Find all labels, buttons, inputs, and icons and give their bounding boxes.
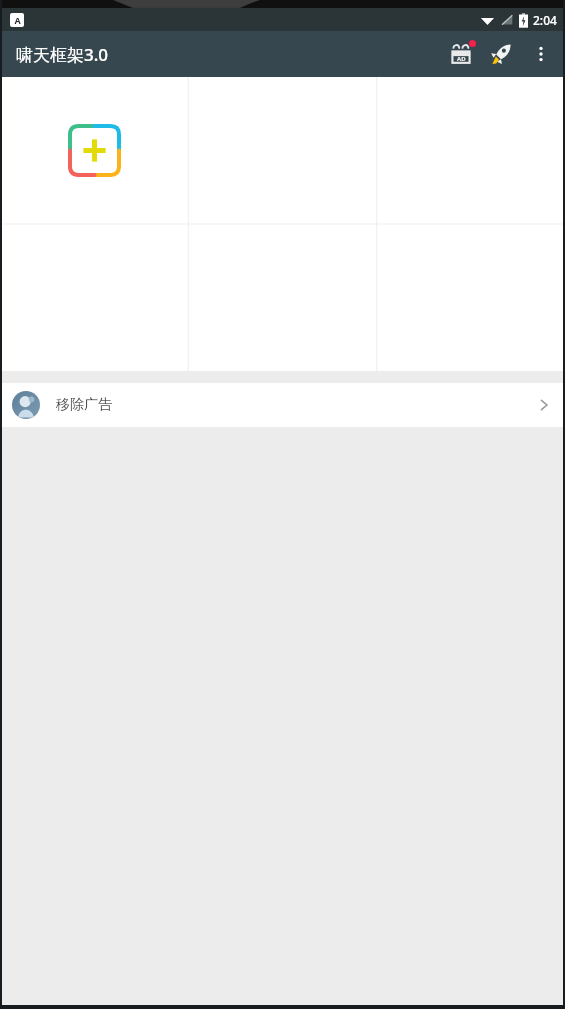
button[interactable]: 移除广告 [0, 383, 565, 427]
staticText: A [14, 14, 21, 26]
button[interactable]: More options [521, 34, 561, 74]
staticText: 移除广告 [56, 396, 112, 414]
button[interactable]: Ads gift [441, 34, 481, 74]
button[interactable]: Add app [68, 124, 121, 177]
button[interactable]: Boost [481, 34, 521, 74]
staticText: 2:04 [533, 12, 557, 28]
staticText: 啸天框架3.0 [16, 43, 109, 66]
staticText: AD [457, 55, 466, 63]
